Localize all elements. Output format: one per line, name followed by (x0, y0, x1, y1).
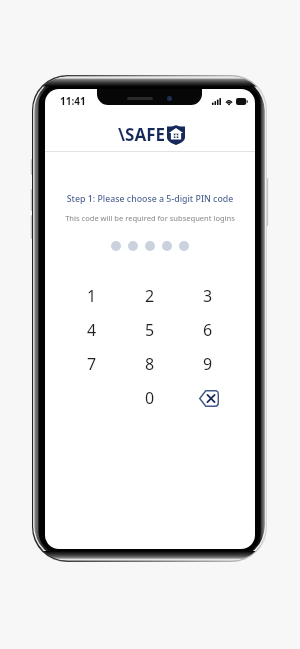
button[interactable]: 2 (121, 279, 179, 313)
button[interactable]: 4 (63, 313, 121, 347)
staticText: 1 (87, 285, 97, 307)
staticText: 0 (145, 387, 155, 409)
button[interactable]: 9 (179, 347, 237, 381)
button[interactable]: 7 (63, 347, 121, 381)
staticText: 6 (203, 319, 213, 341)
staticText: 2 (145, 285, 155, 307)
button[interactable]: 5 (121, 313, 179, 347)
staticText: 4 (87, 319, 97, 341)
button[interactable]: 8 (121, 347, 179, 381)
staticText: 5 (145, 319, 155, 341)
staticText: 9 (203, 353, 213, 375)
button[interactable]: 6 (179, 313, 237, 347)
staticText: 8 (145, 353, 155, 375)
staticText: \SAFE (118, 123, 166, 146)
button[interactable]: 3 (179, 279, 237, 313)
staticText: Step 1: Please choose a 5-digit PIN code (45, 193, 255, 205)
button[interactable]: 0 (121, 381, 179, 415)
staticText: 3 (203, 285, 213, 307)
button[interactable]: Backspace (179, 381, 237, 415)
staticText: 7 (87, 353, 97, 375)
staticText: This code will be required for subsequen… (45, 213, 255, 223)
button[interactable]: 1 (63, 279, 121, 313)
staticText: 11:41 (60, 94, 86, 108)
